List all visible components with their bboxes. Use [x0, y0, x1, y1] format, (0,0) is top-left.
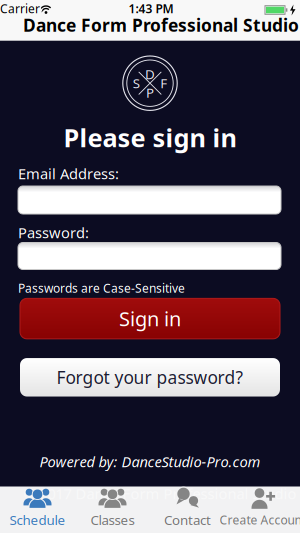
button[interactable]: Powered by: DanceStudio-Pro.com	[39, 452, 260, 471]
staticText: Password:	[18, 223, 89, 242]
staticText: Schedule	[9, 511, 65, 529]
staticText: Contact	[164, 511, 211, 529]
staticText: S	[133, 74, 140, 92]
staticText: © 2017 Dance Form Professional Studio	[23, 484, 296, 503]
staticText: D	[145, 65, 155, 83]
button[interactable]: Forgot your password?	[20, 358, 280, 397]
button[interactable]: Schedule	[0, 487, 75, 533]
staticText: Carrier	[0, 0, 40, 16]
staticText: Dance Form Professional Studio	[23, 13, 299, 36]
staticText: Classes	[90, 511, 134, 529]
staticText: Create Account	[219, 512, 300, 528]
staticText: Forgot your password?	[56, 366, 243, 389]
button[interactable]	[18, 186, 281, 214]
staticText: Sign in	[119, 305, 181, 332]
staticText: F	[160, 74, 167, 92]
button[interactable]: Create Account	[225, 487, 300, 533]
staticText: P	[146, 84, 154, 101]
staticText: Please sign in	[63, 120, 236, 154]
staticText: Powered by: DanceStudio-Pro.com	[39, 452, 260, 471]
button[interactable]: Sign in	[20, 298, 280, 339]
button[interactable]: Classes	[75, 487, 150, 533]
staticText: Email Address:	[18, 164, 119, 183]
staticText: 1:43 PM	[128, 0, 173, 16]
button[interactable]: Contact	[150, 487, 225, 533]
staticText: Passwords are Case-Sensitive	[18, 280, 185, 296]
button[interactable]	[18, 242, 281, 269]
